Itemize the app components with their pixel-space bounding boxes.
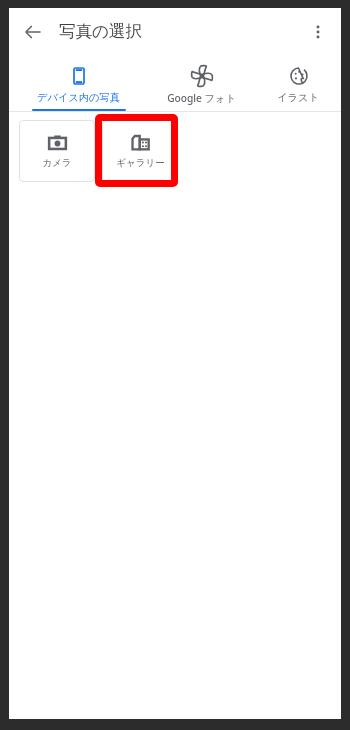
staticText: ギャラリー (116, 157, 165, 169)
button[interactable]: その他のオプション (298, 12, 338, 52)
staticText: デバイス内の写真 (37, 91, 120, 104)
staticText: 写真の選択 (59, 21, 142, 42)
staticText: Google フォト (167, 91, 236, 105)
button[interactable]: ギャラリー (102, 120, 178, 182)
staticText: カメラ (42, 157, 72, 169)
button[interactable]: カメラ (19, 120, 95, 182)
button[interactable]: 戻る (13, 12, 53, 52)
button[interactable]: デバイス内の写真 (9, 56, 148, 111)
staticText: イラスト (277, 91, 319, 104)
button[interactable]: イラスト (255, 56, 341, 109)
button[interactable]: Google フォト (148, 56, 255, 110)
